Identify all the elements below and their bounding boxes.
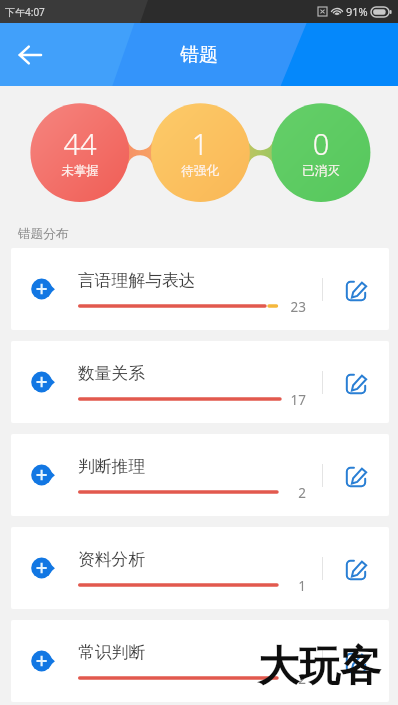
button[interactable]: Add (29, 647, 57, 675)
button[interactable]: Add (11, 248, 389, 330)
button[interactable]: Edit (334, 641, 378, 685)
button[interactable]: Add (29, 554, 57, 582)
staticText: 44 (30, 124, 130, 163)
button[interactable]: Add (11, 341, 389, 423)
button[interactable]: Add (11, 620, 389, 702)
staticText: 资料分析 (78, 549, 146, 570)
staticText: 1 (150, 124, 250, 163)
staticText: 大玩客 (258, 641, 381, 693)
staticText: 2 (246, 670, 306, 688)
button[interactable]: Edit (334, 548, 378, 592)
staticText: 错题分布 (18, 226, 69, 242)
button[interactable]: Add (29, 275, 57, 303)
staticText: 0 (271, 124, 371, 163)
staticText: 2 (246, 484, 306, 502)
staticText: 言语理解与表达 (78, 270, 196, 291)
staticText: 下午4:07 (5, 5, 45, 19)
staticText: 91% (346, 4, 368, 19)
button[interactable]: Edit (334, 269, 378, 313)
staticText: 常识判断 (78, 642, 146, 663)
button[interactable]: Add (29, 461, 57, 489)
button[interactable]: Add (29, 368, 57, 396)
button[interactable]: Back (6, 31, 54, 79)
button[interactable]: Add (11, 527, 389, 609)
button[interactable]: Add (11, 434, 389, 516)
button[interactable]: Edit (334, 362, 378, 406)
staticText: 已消灭 (271, 163, 371, 179)
staticText: 17 (246, 391, 306, 409)
staticText: 待强化 (150, 163, 250, 179)
staticText: 错题 (180, 43, 218, 67)
staticText: 23 (246, 298, 306, 316)
staticText: 未掌握 (30, 163, 130, 179)
staticText: 判断推理 (78, 456, 146, 477)
staticText: 数量关系 (78, 363, 146, 384)
staticText: 1 (246, 577, 306, 595)
button[interactable]: Edit (334, 455, 378, 499)
